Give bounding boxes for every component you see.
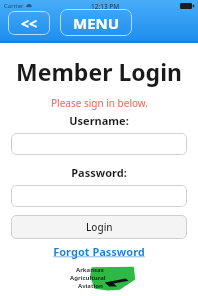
button[interactable]: Text input bbox=[11, 133, 187, 155]
button[interactable]: Text input bbox=[11, 185, 187, 207]
staticText: Login bbox=[86, 220, 113, 234]
button[interactable]: Back bbox=[8, 11, 50, 35]
button[interactable]: Login bbox=[11, 215, 187, 239]
other: Arkansas Agricultural Aviation logo bbox=[62, 264, 136, 292]
staticText: Please sign in below. bbox=[51, 96, 148, 110]
staticText: Arkansas bbox=[76, 266, 104, 274]
staticText: Agricultural bbox=[70, 274, 106, 282]
staticText: 12:13 PM bbox=[91, 2, 120, 11]
staticText: << bbox=[21, 14, 38, 33]
staticText: MENU bbox=[73, 13, 120, 33]
staticText: Username: bbox=[69, 113, 129, 128]
staticText: Member Login bbox=[16, 56, 182, 87]
staticText: Carrier bbox=[4, 2, 24, 10]
staticText: Aviation bbox=[78, 282, 104, 290]
staticText: Forgot Password bbox=[53, 244, 145, 259]
staticText: Password: bbox=[71, 165, 127, 180]
button[interactable]: Forgot Password bbox=[0, 244, 198, 259]
button[interactable]: MENU bbox=[60, 9, 132, 36]
